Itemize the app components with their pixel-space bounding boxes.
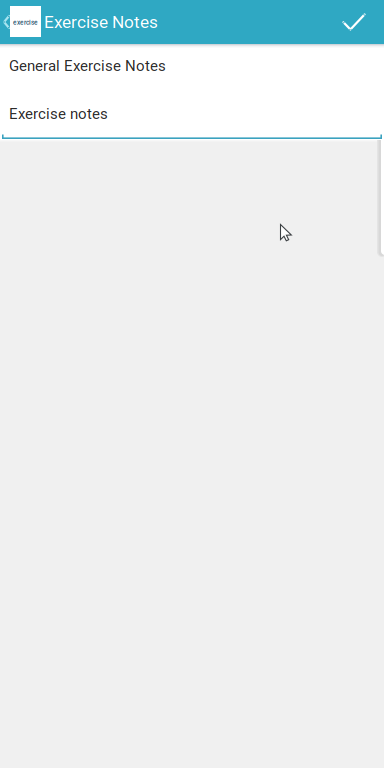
staticText: Exercise notes	[9, 105, 108, 123]
button[interactable]: Exercise notes	[0, 90, 384, 139]
button[interactable]: Back	[0, 0, 11, 44]
button[interactable]: Save	[332, 0, 376, 44]
staticText: Exercise Notes	[44, 12, 158, 32]
staticText: General Exercise Notes	[9, 57, 166, 75]
staticText: exercise	[13, 19, 38, 26]
